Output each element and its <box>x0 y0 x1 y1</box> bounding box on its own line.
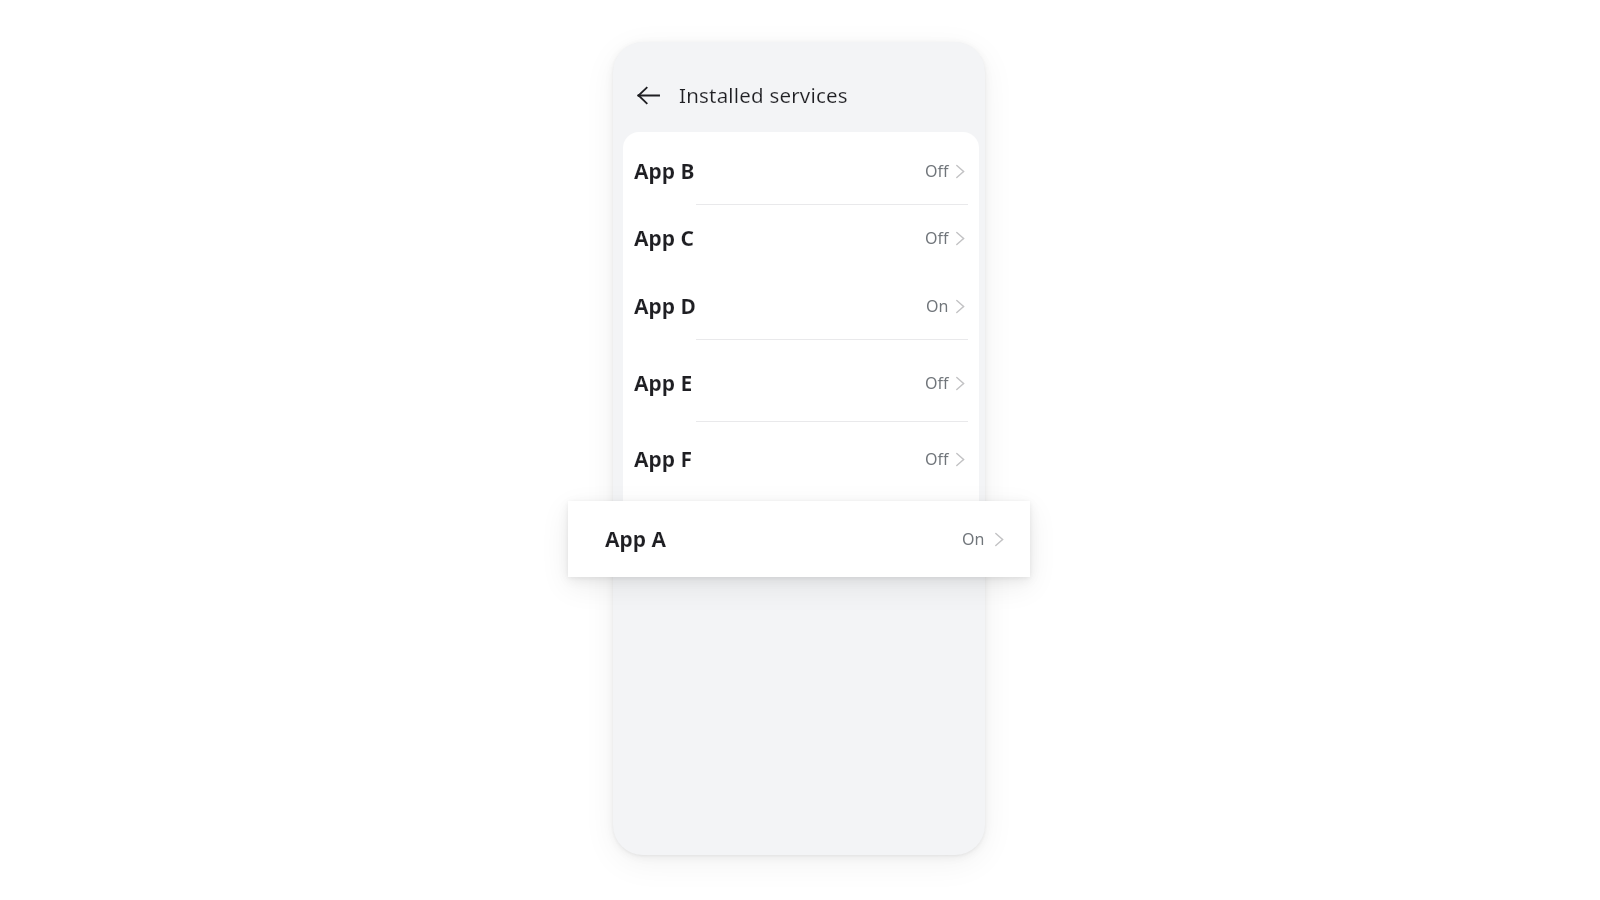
staticText: App F <box>634 445 693 474</box>
button[interactable]: App F <box>623 425 979 493</box>
button[interactable]: App C <box>623 204 979 272</box>
staticText: App E <box>634 369 693 398</box>
button[interactable]: App E <box>623 349 979 417</box>
staticText: Off <box>925 227 949 249</box>
button[interactable]: App D <box>623 272 979 340</box>
staticText: On <box>962 528 985 550</box>
button[interactable]: Back <box>624 71 672 119</box>
staticText: App A <box>605 525 667 554</box>
staticText: On <box>926 295 949 317</box>
staticText: Off <box>925 372 949 394</box>
staticText: Off <box>925 160 949 182</box>
staticText: Installed services <box>679 81 848 109</box>
staticText: App B <box>634 157 695 186</box>
staticText: App C <box>634 224 695 253</box>
staticText: Off <box>925 448 949 470</box>
button[interactable]: App A <box>568 501 1030 577</box>
button[interactable]: App B <box>623 137 979 205</box>
staticText: App D <box>634 292 696 321</box>
